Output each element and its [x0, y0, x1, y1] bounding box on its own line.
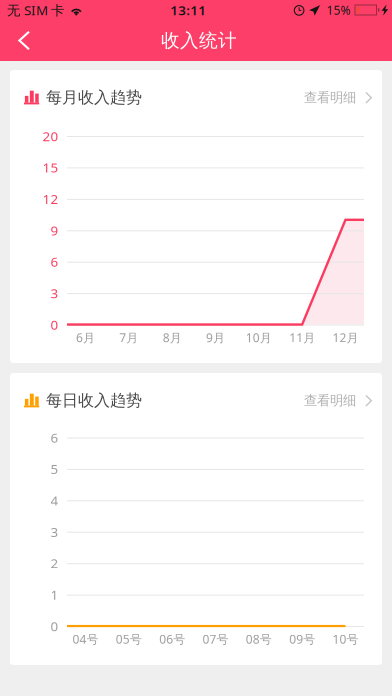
- staticText: 无 SIM 卡: [7, 1, 64, 19]
- staticText: 2: [50, 554, 58, 572]
- staticText: 6月: [76, 330, 95, 345]
- staticText: 10月: [246, 330, 272, 345]
- staticText: 收入统计: [161, 29, 237, 52]
- staticText: 06号: [159, 631, 185, 647]
- staticText: 9: [50, 221, 58, 239]
- staticText: 3: [50, 523, 58, 541]
- staticText: 11月: [289, 330, 315, 345]
- staticText: 09号: [289, 631, 315, 647]
- staticText: 每月收入趋势: [46, 88, 142, 107]
- staticText: 查看明细: [304, 89, 356, 106]
- staticText: 9月: [206, 330, 225, 345]
- staticText: 12: [42, 190, 58, 208]
- staticText: 4: [50, 491, 58, 509]
- staticText: 10号: [332, 631, 358, 647]
- staticText: 6: [50, 429, 58, 446]
- staticText: 20: [42, 127, 58, 145]
- staticText: 07号: [202, 631, 228, 647]
- staticText: 15%: [326, 2, 350, 18]
- button[interactable]: 返回: [0, 20, 47, 60]
- button[interactable]: 查看明细: [304, 85, 373, 110]
- staticText: 12月: [332, 330, 358, 345]
- staticText: 04号: [72, 631, 98, 647]
- staticText: 5: [50, 460, 58, 478]
- button[interactable]: 查看明细: [304, 388, 373, 413]
- staticText: 13:11: [170, 1, 206, 19]
- staticText: 15: [42, 159, 58, 176]
- staticText: 3: [50, 284, 58, 302]
- staticText: 每日收入趋势: [46, 391, 142, 410]
- staticText: 08号: [246, 631, 272, 647]
- staticText: 6: [50, 253, 58, 270]
- staticText: 查看明细: [304, 392, 356, 409]
- staticText: 0: [50, 316, 58, 333]
- staticText: 8月: [163, 330, 182, 345]
- staticText: 05号: [116, 631, 142, 647]
- staticText: 1: [50, 586, 58, 603]
- staticText: 0: [50, 617, 58, 635]
- staticText: 7月: [119, 330, 138, 345]
